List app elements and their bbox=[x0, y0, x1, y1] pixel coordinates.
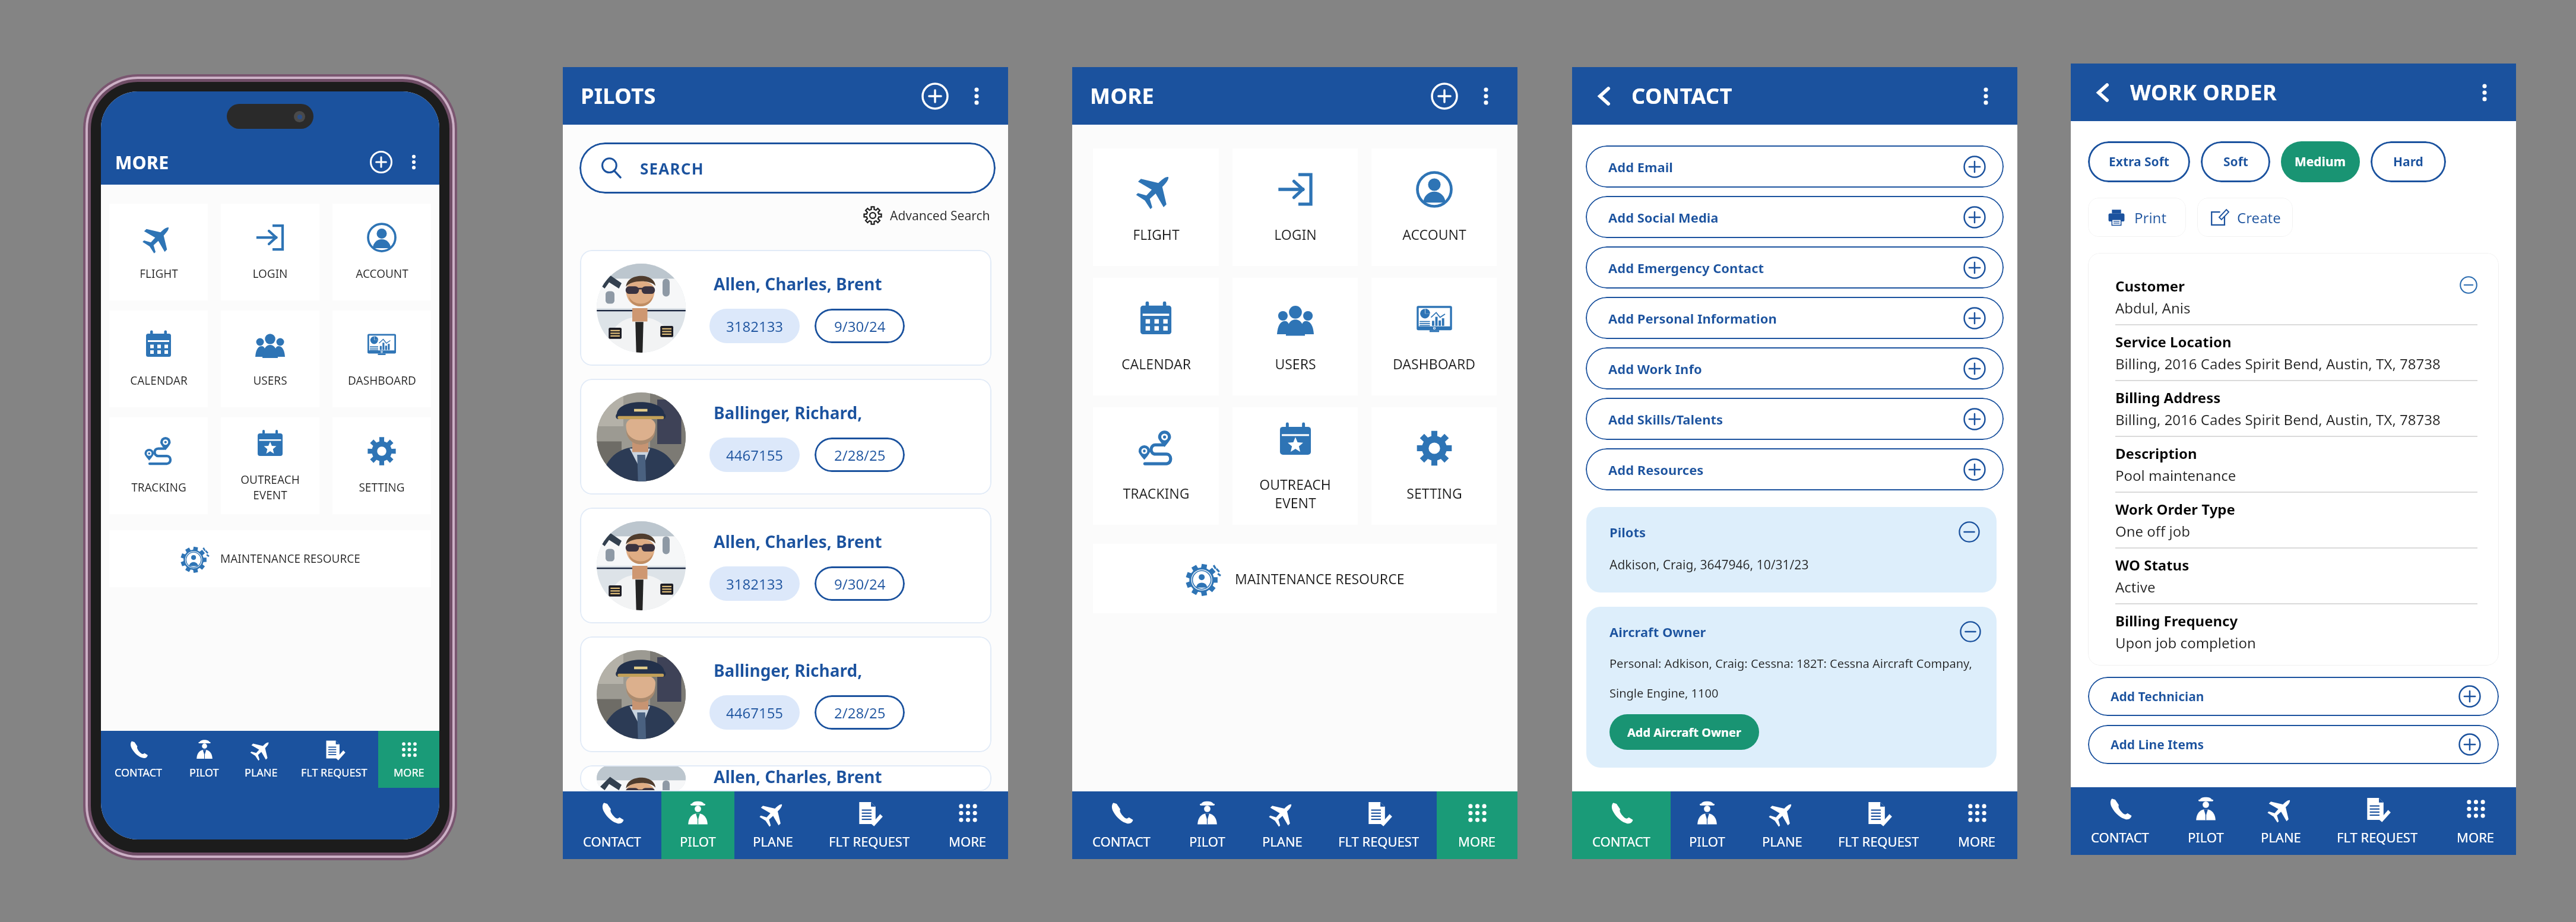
button[interactable]: Hard bbox=[2371, 141, 2446, 182]
button[interactable]: CONTACT bbox=[1572, 791, 1671, 859]
staticText: PLANE bbox=[1762, 832, 1802, 850]
button[interactable]: Back bbox=[1590, 81, 1620, 111]
button[interactable]: CONTACT bbox=[563, 791, 661, 859]
button[interactable]: More options bbox=[1972, 83, 2000, 110]
button[interactable]: PILOT bbox=[176, 731, 232, 788]
staticText: Add Email bbox=[1608, 158, 1673, 176]
button[interactable]: MAINTENANCE RESOURCE bbox=[109, 530, 431, 587]
staticText: MORE bbox=[949, 832, 987, 850]
button[interactable]: CONTACT bbox=[101, 731, 176, 788]
staticText: Advanced Search bbox=[890, 207, 990, 224]
staticText: TRACKING bbox=[131, 480, 186, 495]
button[interactable]: USERS bbox=[221, 310, 319, 407]
button[interactable]: OUTREACH bbox=[221, 417, 319, 514]
button[interactable]: FLT REQUEST bbox=[1321, 791, 1437, 859]
button[interactable]: Add Resources bbox=[1586, 448, 2004, 490]
button[interactable]: Back bbox=[2089, 78, 2118, 107]
button[interactable]: TRACKING bbox=[109, 417, 208, 514]
button[interactable]: LOGIN bbox=[1232, 148, 1358, 266]
button[interactable]: PILOT bbox=[661, 791, 734, 859]
button[interactable]: Add bbox=[366, 147, 397, 178]
button[interactable]: CONTACT bbox=[2071, 787, 2169, 855]
button[interactable]: Allen, Charles, Brent bbox=[580, 508, 991, 623]
staticText: EVENT bbox=[253, 487, 287, 503]
button[interactable]: Add Personal Information bbox=[1586, 297, 2004, 339]
staticText: Ballinger, Richard, bbox=[714, 401, 863, 424]
button[interactable]: DASHBOARD bbox=[1371, 278, 1497, 395]
button[interactable]: MORE bbox=[2435, 787, 2516, 855]
button[interactable]: More options bbox=[2471, 79, 2498, 106]
staticText: Active bbox=[2115, 577, 2156, 597]
button[interactable]: PILOT bbox=[2169, 787, 2242, 855]
button[interactable]: FLT REQUEST bbox=[2320, 787, 2435, 855]
button[interactable]: Add Emergency Contact bbox=[1586, 246, 2004, 289]
button[interactable]: TRACKING bbox=[1093, 407, 1219, 525]
staticText: MORE bbox=[1458, 832, 1496, 850]
button[interactable]: Add Technician bbox=[2088, 677, 2499, 716]
button[interactable]: Advanced Search bbox=[863, 206, 990, 225]
button[interactable]: DASHBOARD bbox=[332, 310, 431, 407]
button[interactable]: Add Work Info bbox=[1586, 347, 2004, 389]
button[interactable]: Add bbox=[1426, 78, 1463, 115]
button[interactable]: MAINTENANCE RESOURCE bbox=[1093, 544, 1497, 613]
button[interactable]: FLIGHT bbox=[1093, 148, 1219, 266]
button[interactable]: MORE bbox=[1937, 791, 2017, 859]
button[interactable]: Ballinger, Richard, bbox=[580, 379, 991, 495]
button[interactable]: MORE bbox=[927, 791, 1008, 859]
button[interactable]: CALENDAR bbox=[109, 310, 208, 407]
staticText: Service Location bbox=[2115, 332, 2232, 351]
button[interactable]: USERS bbox=[1232, 278, 1358, 395]
staticText: Allen, Charles, Brent bbox=[714, 530, 882, 553]
staticText: Create bbox=[2237, 208, 2281, 227]
button[interactable]: Allen, Charles, Brent bbox=[580, 250, 991, 366]
button[interactable]: Create bbox=[2197, 198, 2293, 237]
staticText: PILOT bbox=[189, 765, 219, 780]
button[interactable]: PLANE bbox=[232, 731, 290, 788]
button[interactable]: FLT REQUEST bbox=[290, 731, 378, 788]
button[interactable]: Aircraft Owner bbox=[1586, 607, 1997, 768]
button[interactable]: PLANE bbox=[1244, 791, 1321, 859]
button[interactable]: Medium bbox=[2281, 141, 2360, 182]
button[interactable]: Ballinger, Richard, bbox=[580, 636, 991, 752]
button[interactable]: FLT REQUEST bbox=[1821, 791, 1937, 859]
button[interactable]: Print bbox=[2088, 198, 2186, 237]
button[interactable]: PLANE bbox=[1744, 791, 1821, 859]
button[interactable]: PLANE bbox=[734, 791, 812, 859]
button[interactable]: SETTING bbox=[1371, 407, 1497, 525]
button[interactable]: More options bbox=[403, 151, 425, 173]
button[interactable]: OUTREACH bbox=[1232, 407, 1358, 525]
button[interactable]: LOGIN bbox=[221, 204, 319, 300]
button[interactable]: Add Aircraft Owner bbox=[1609, 714, 1759, 750]
staticText: Allen, Charles, Brent bbox=[714, 765, 882, 788]
staticText: Add Emergency Contact bbox=[1608, 259, 1764, 277]
button[interactable]: Allen, Charles, Brent bbox=[580, 765, 991, 791]
button[interactable]: Extra Soft bbox=[2088, 141, 2190, 182]
staticText: Add Work Info bbox=[1608, 360, 1702, 378]
staticText: CONTACT bbox=[1631, 81, 1732, 110]
button[interactable]: Add Social Media bbox=[1586, 196, 2004, 238]
staticText: MAINTENANCE RESOURCE bbox=[220, 551, 360, 566]
button[interactable]: Add Line Items bbox=[2088, 725, 2499, 764]
button[interactable]: Pilots bbox=[1586, 507, 1997, 593]
button[interactable]: CONTACT bbox=[1072, 791, 1171, 859]
button[interactable]: CALENDAR bbox=[1093, 278, 1219, 395]
button[interactable]: ACCOUNT bbox=[1371, 148, 1497, 266]
button[interactable]: MORE bbox=[378, 731, 439, 788]
button[interactable]: SETTING bbox=[332, 417, 431, 514]
button[interactable]: FLIGHT bbox=[109, 204, 208, 300]
button[interactable]: Add Email bbox=[1586, 145, 2004, 188]
button[interactable]: ACCOUNT bbox=[332, 204, 431, 300]
button[interactable]: FLT REQUEST bbox=[812, 791, 927, 859]
button[interactable]: SEARCH bbox=[579, 142, 996, 194]
button[interactable]: More options bbox=[963, 83, 990, 110]
button[interactable]: Soft bbox=[2201, 141, 2270, 182]
button[interactable]: PLANE bbox=[2242, 787, 2320, 855]
staticText: PILOT bbox=[2188, 828, 2224, 846]
button[interactable]: Add Skills/Talents bbox=[1586, 398, 2004, 440]
button[interactable]: MORE bbox=[1437, 791, 1517, 859]
staticText: PLANE bbox=[245, 765, 278, 780]
button[interactable]: PILOT bbox=[1171, 791, 1244, 859]
button[interactable]: More options bbox=[1472, 83, 1500, 110]
button[interactable]: PILOT bbox=[1671, 791, 1744, 859]
button[interactable]: Add bbox=[917, 78, 953, 115]
